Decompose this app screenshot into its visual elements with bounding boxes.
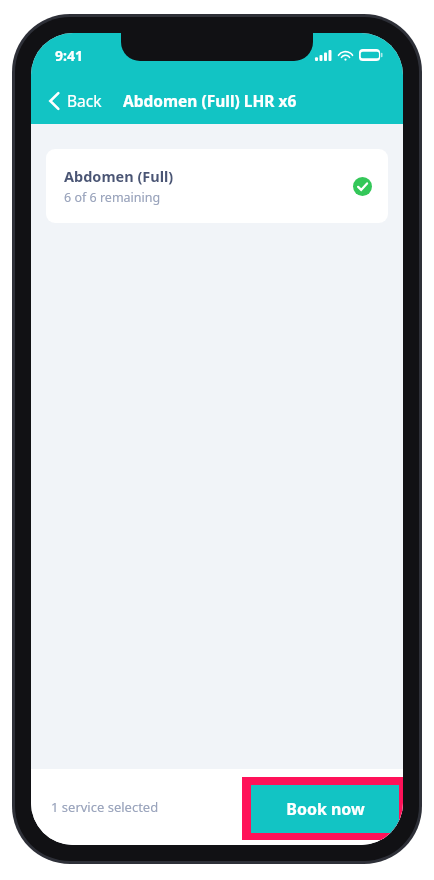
staticText: 1 service selected	[51, 798, 159, 816]
staticText: Book now	[286, 798, 365, 820]
button[interactable]: Back	[31, 84, 108, 117]
staticText: Abdomen (Full) LHR x6	[123, 90, 297, 111]
staticText: Back	[67, 90, 102, 111]
other: Selected	[353, 177, 372, 196]
button[interactable]: Book now	[242, 777, 403, 840]
button[interactable]: Abdomen (Full)	[46, 149, 388, 223]
staticText: Abdomen (Full)	[64, 166, 174, 186]
staticText: 6 of 6 remaining	[64, 189, 161, 206]
staticText: 9:41	[55, 46, 83, 65]
